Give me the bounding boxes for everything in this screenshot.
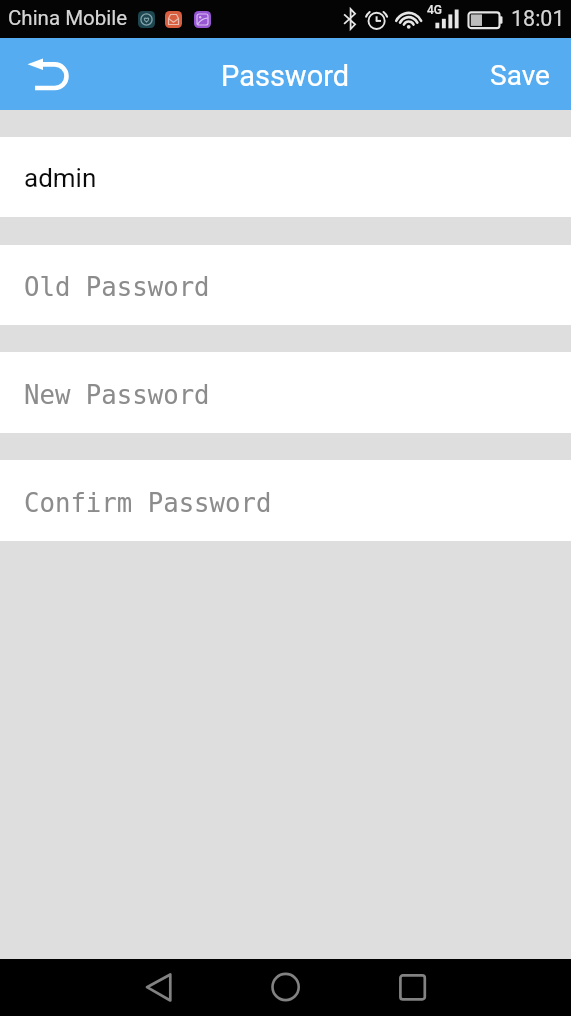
- staticText: China Mobile: [8, 6, 128, 30]
- button[interactable]: Recent apps: [384, 959, 440, 1016]
- staticText: admin: [24, 163, 97, 193]
- staticText: 4G: [427, 3, 442, 17]
- button[interactable]: Back: [129, 959, 185, 1016]
- staticText: Confirm Password: [24, 488, 272, 518]
- staticText: Password: [221, 59, 350, 93]
- button[interactable]: Back: [0, 38, 90, 110]
- button[interactable]: New Password: [0, 352, 571, 433]
- staticText: 18:01: [511, 6, 565, 31]
- button[interactable]: Confirm Password: [0, 460, 571, 541]
- button[interactable]: Old Password: [0, 245, 571, 325]
- button[interactable]: Save: [469, 38, 571, 110]
- staticText: New Password: [24, 380, 210, 410]
- button[interactable]: admin: [0, 137, 571, 217]
- staticText: Old Password: [24, 272, 210, 302]
- staticText: Save: [490, 59, 550, 92]
- button[interactable]: Home: [258, 959, 314, 1016]
